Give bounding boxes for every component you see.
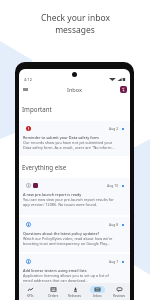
button[interactable]: Releases [64,283,86,300]
staticText: Add license testers using email lists [23,268,87,273]
staticText: Watch our PolicyBytes video, read about … [23,236,113,246]
staticText: A new pre-launch report is ready [23,192,82,197]
staticText: Inbox [93,294,102,298]
staticText: Reminder to submit your Data safety form [23,135,99,140]
button[interactable]: KPIs [19,283,42,300]
button[interactable]: Menu [20,84,31,95]
staticText: You can now view your pre-launch report … [23,197,114,207]
button[interactable]: Orders [42,283,64,300]
button[interactable]: Account [120,86,127,93]
button[interactable]: Aug 7 [19,254,130,283]
button[interactable]: Aug 10 [19,178,130,215]
button[interactable]: Aug 2 [19,121,130,156]
staticText: Reviews [113,294,125,298]
staticText: 4:12 [24,77,32,82]
staticText: Important [22,105,52,113]
staticText: Releases [68,294,82,298]
staticText: Orders [48,294,59,298]
staticText: messages [55,24,95,36]
staticText: Our records show you have not yet submit… [23,140,115,150]
staticText: Inbox [67,86,83,94]
staticText: KPIs [27,294,34,298]
staticText: Aug 8 [109,222,119,227]
staticText: Everything else [22,163,67,171]
staticText: Aug 2 [109,126,119,131]
button[interactable]: Aug 8 [19,217,130,252]
staticText: Questions about the latest policy update… [23,231,100,236]
button[interactable]: Inbox [86,283,108,300]
staticText: Check your inbox [41,12,110,24]
staticText: Aug 10 [107,183,119,188]
button[interactable]: Reviews [108,283,130,300]
staticText: Aug 7 [109,259,119,264]
staticText: Application licensing allows you to set … [23,273,109,283]
